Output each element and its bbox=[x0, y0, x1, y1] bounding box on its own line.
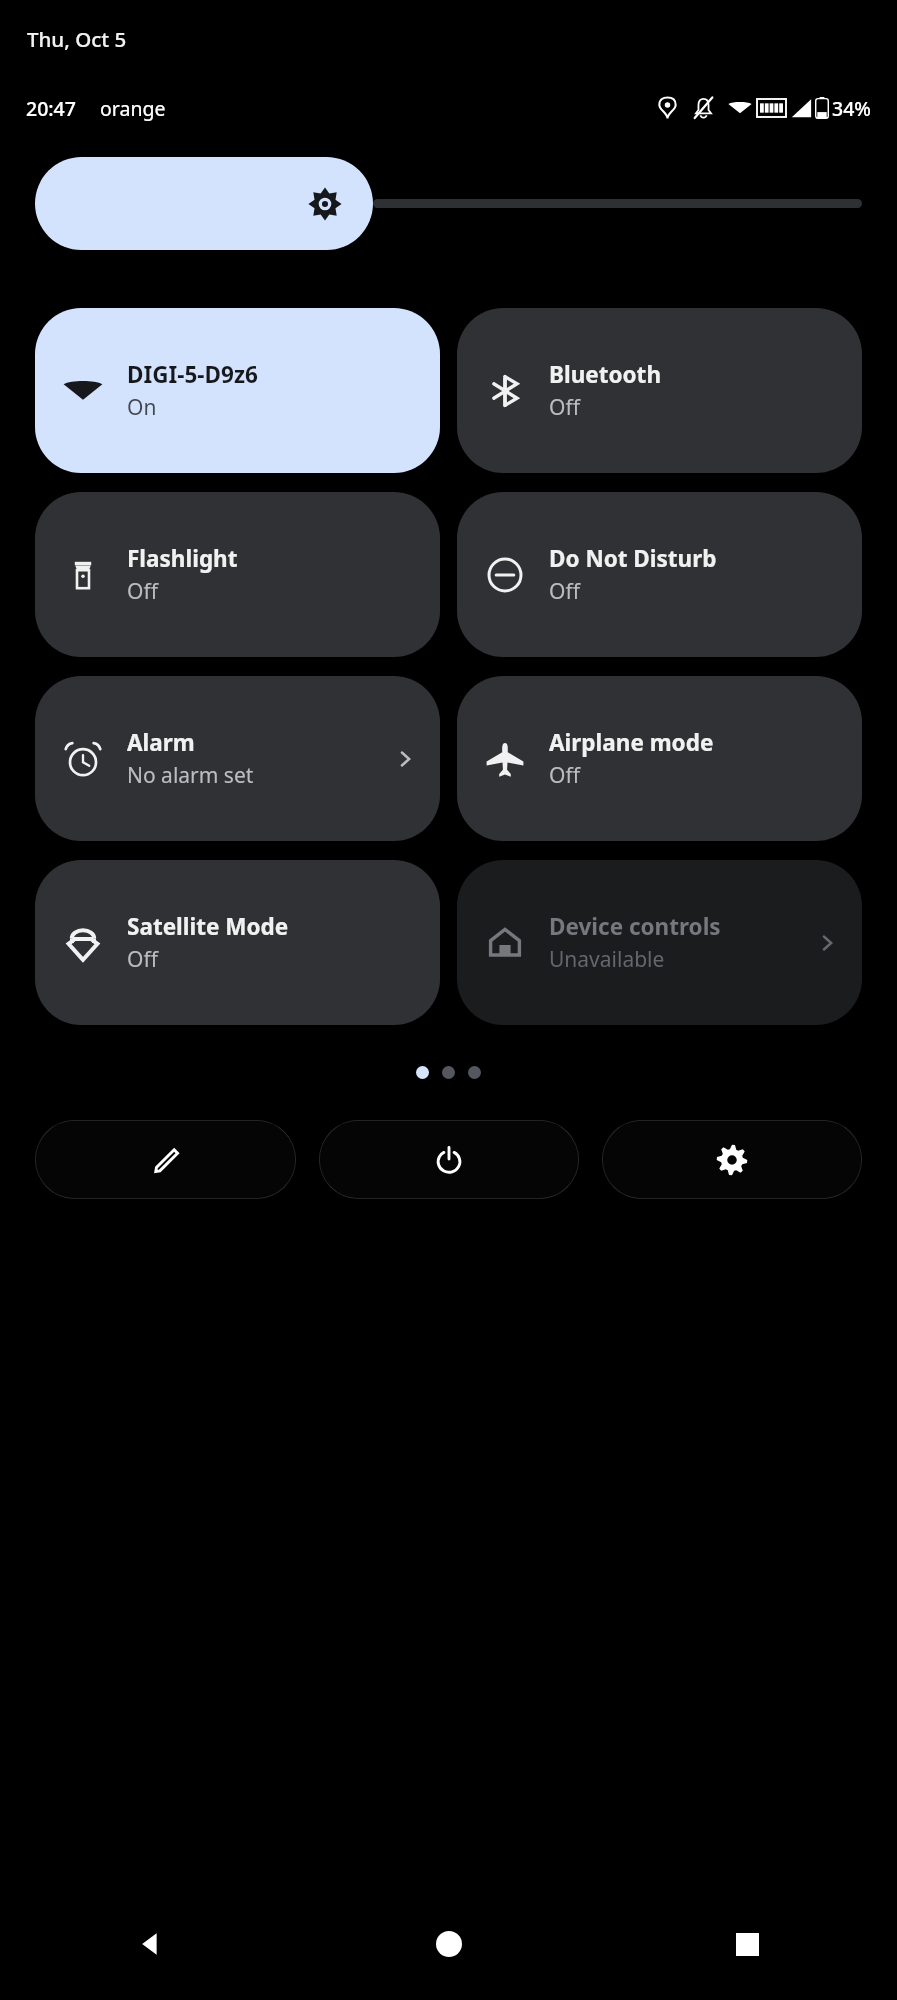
button[interactable]: Power bbox=[319, 1120, 579, 1199]
staticText: orange bbox=[100, 95, 166, 122]
staticText: Do Not Disturb bbox=[549, 543, 717, 574]
staticText: Flashlight bbox=[127, 543, 238, 574]
button[interactable]: Satellite Mode bbox=[35, 860, 440, 1025]
staticText: Unavailable bbox=[549, 945, 665, 974]
staticText: Off bbox=[127, 945, 158, 974]
button[interactable]: Settings bbox=[602, 1120, 862, 1199]
button[interactable]: Brightness bbox=[35, 157, 373, 250]
staticText: Off bbox=[549, 393, 580, 422]
staticText: Thu, Oct 5 bbox=[27, 25, 127, 53]
button[interactable]: Recent apps bbox=[598, 1888, 897, 2000]
button[interactable]: Back bbox=[0, 1888, 299, 2000]
button[interactable]: Edit bbox=[35, 1120, 296, 1199]
button[interactable]: Device controls bbox=[457, 860, 862, 1025]
button[interactable]: DIGI-5-D9z6 bbox=[35, 308, 440, 473]
staticText: Device controls bbox=[549, 911, 721, 942]
button[interactable]: Alarm bbox=[35, 676, 440, 841]
staticText: On bbox=[127, 393, 157, 422]
staticText: Off bbox=[549, 761, 580, 790]
staticText: Satellite Mode bbox=[127, 911, 289, 942]
button[interactable]: Bluetooth bbox=[457, 308, 862, 473]
button[interactable]: Home bbox=[299, 1888, 598, 2000]
staticText: Airplane mode bbox=[549, 727, 714, 758]
staticText: 34% bbox=[832, 95, 871, 122]
staticText: No alarm set bbox=[127, 761, 254, 790]
button[interactable]: Flashlight bbox=[35, 492, 440, 657]
button[interactable]: Do Not Disturb bbox=[457, 492, 862, 657]
staticText: Off bbox=[549, 577, 580, 606]
staticText: DIGI-5-D9z6 bbox=[127, 359, 258, 390]
staticText: Alarm bbox=[127, 727, 195, 758]
button[interactable]: Airplane mode bbox=[457, 676, 862, 841]
staticText: 20:47 bbox=[26, 95, 76, 122]
staticText: Bluetooth bbox=[549, 359, 662, 390]
staticText: Off bbox=[127, 577, 158, 606]
